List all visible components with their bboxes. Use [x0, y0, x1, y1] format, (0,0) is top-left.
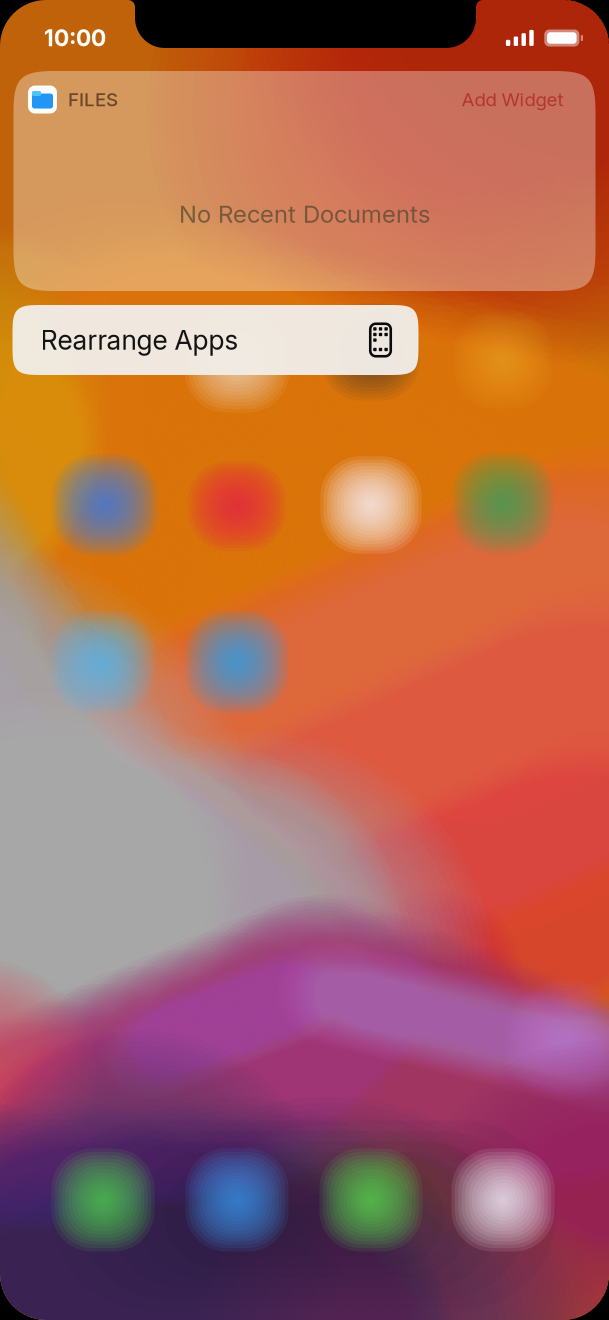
button[interactable]: Add Widget — [447, 82, 563, 117]
button[interactable]: Rearrange Apps — [12, 305, 418, 375]
staticText: No Recent Documents — [179, 199, 430, 228]
staticText: Rearrange Apps — [40, 324, 238, 356]
staticText: 10:00 — [44, 24, 106, 52]
staticText: FILES — [68, 88, 118, 111]
staticText: Add Widget — [461, 88, 563, 111]
